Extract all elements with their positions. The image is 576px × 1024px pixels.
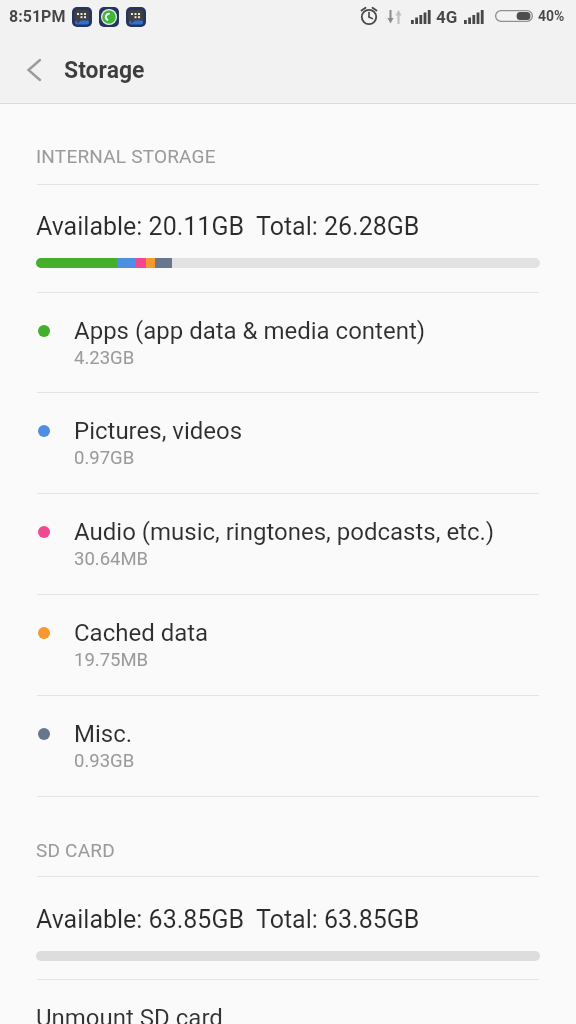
button[interactable]: Misc. — [0, 695, 576, 795]
staticText: 8:51PM — [9, 7, 66, 26]
staticText: Storage — [64, 57, 145, 84]
button[interactable]: Pictures, videos — [0, 392, 576, 492]
staticText: 0.97GB — [74, 447, 135, 469]
button[interactable] — [0, 36, 60, 103]
staticText: Misc. — [74, 720, 133, 748]
staticText: Pictures, videos — [74, 417, 243, 445]
button[interactable]: Audio (music, ringtones, podcasts, etc.) — [0, 493, 576, 593]
staticText: Available: 63.85GB Total: 63.85GB — [36, 905, 420, 934]
staticText: INTERNAL STORAGE — [36, 145, 216, 167]
staticText: 40% — [538, 8, 565, 24]
staticText: 19.75MB — [74, 649, 149, 671]
staticText: Available: 20.11GB Total: 26.28GB — [36, 212, 420, 241]
staticText: 0.93GB — [74, 750, 135, 772]
staticText: Apps (app data & media content) — [74, 317, 426, 345]
staticText: 4.23GB — [74, 347, 135, 369]
staticText: SD CARD — [36, 839, 115, 861]
button[interactable]: Unmount SD card — [0, 994, 576, 1024]
staticText: Unmount SD card — [36, 1004, 223, 1024]
staticText: Audio (music, ringtones, podcasts, etc.) — [74, 518, 495, 546]
button[interactable]: Apps (app data & media content) — [0, 292, 576, 392]
button[interactable]: Cached data — [0, 594, 576, 694]
staticText: 30.64MB — [74, 548, 149, 570]
staticText: 4G — [436, 7, 458, 27]
staticText: Cached data — [74, 619, 209, 647]
